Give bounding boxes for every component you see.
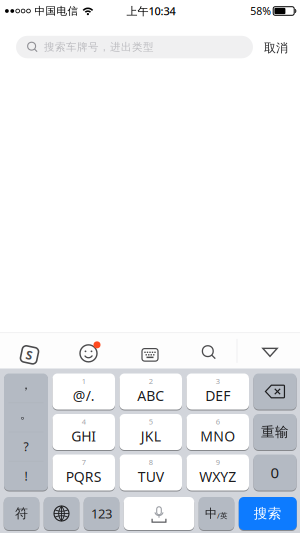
staticText: 8 bbox=[149, 457, 153, 467]
button[interactable]: @/. bbox=[52, 373, 115, 409]
button[interactable]: 符 bbox=[4, 497, 39, 530]
button[interactable]: 搜狗输入法 bbox=[0, 333, 59, 368]
button[interactable]: 取消 bbox=[264, 40, 288, 56]
button[interactable]: 表情 bbox=[59, 333, 118, 368]
staticText: ? bbox=[23, 438, 28, 455]
button[interactable]: 切换输入法 bbox=[44, 497, 79, 530]
staticText: TUV bbox=[138, 467, 164, 486]
button[interactable]: 空格 bbox=[124, 497, 194, 530]
staticText: 重输 bbox=[261, 423, 289, 440]
button[interactable]: GHI bbox=[52, 414, 115, 450]
staticText: ABC bbox=[137, 386, 164, 405]
button[interactable]: TUV bbox=[119, 454, 182, 490]
staticText: ， bbox=[20, 377, 32, 393]
staticText: 中 bbox=[205, 506, 217, 521]
button[interactable]: 搜索车牌号，进出类型 bbox=[16, 36, 253, 58]
staticText: 搜索车牌号，进出类型 bbox=[44, 40, 154, 54]
staticText: 0 bbox=[270, 462, 279, 483]
staticText: ! bbox=[24, 468, 27, 484]
button[interactable]: DEF bbox=[186, 373, 249, 409]
staticText: MNO bbox=[200, 427, 235, 446]
staticText: 符 bbox=[15, 505, 28, 522]
staticText: DEF bbox=[205, 386, 230, 405]
button[interactable]: 搜索 bbox=[178, 333, 237, 368]
staticText: 58% bbox=[250, 4, 271, 18]
staticText: 4 bbox=[82, 416, 86, 427]
button[interactable]: 删除 bbox=[253, 373, 296, 409]
staticText: JKL bbox=[141, 427, 161, 446]
staticText: 2 bbox=[149, 376, 153, 386]
button[interactable]: 键盘设置 bbox=[118, 333, 178, 368]
staticText: 6 bbox=[216, 416, 220, 427]
button[interactable]: 重输 bbox=[253, 414, 296, 450]
staticText: /英 bbox=[217, 510, 228, 521]
staticText: 123 bbox=[91, 505, 112, 522]
staticText: PQRS bbox=[66, 467, 102, 486]
staticText: 。 bbox=[20, 407, 32, 422]
staticText: @/. bbox=[73, 386, 95, 405]
staticText: 上午10:34 bbox=[126, 3, 175, 18]
staticText: 9 bbox=[216, 457, 220, 467]
staticText: WXYZ bbox=[199, 467, 236, 486]
staticText: 中国电信 bbox=[34, 4, 78, 18]
button[interactable]: WXYZ bbox=[186, 454, 249, 490]
staticText: S bbox=[26, 347, 33, 363]
staticText: 1 bbox=[82, 376, 86, 386]
button[interactable]: 0 bbox=[253, 454, 296, 490]
button[interactable]: ABC bbox=[119, 373, 182, 409]
button[interactable]: 搜索 bbox=[239, 497, 297, 530]
button[interactable]: 收起键盘 bbox=[237, 333, 300, 368]
button[interactable]: PQRS bbox=[52, 454, 115, 490]
button[interactable]: 中 bbox=[199, 497, 234, 530]
staticText: GHI bbox=[71, 427, 96, 446]
staticText: 搜索 bbox=[254, 505, 282, 522]
button[interactable]: JKL bbox=[119, 414, 182, 450]
button[interactable]: MNO bbox=[186, 414, 249, 450]
staticText: 取消 bbox=[264, 40, 288, 56]
staticText: 5 bbox=[149, 416, 153, 427]
staticText: 7 bbox=[82, 457, 86, 467]
staticText: 3 bbox=[216, 376, 220, 386]
button[interactable]: 123 bbox=[84, 497, 119, 530]
button[interactable]: 标点 bbox=[4, 373, 48, 490]
